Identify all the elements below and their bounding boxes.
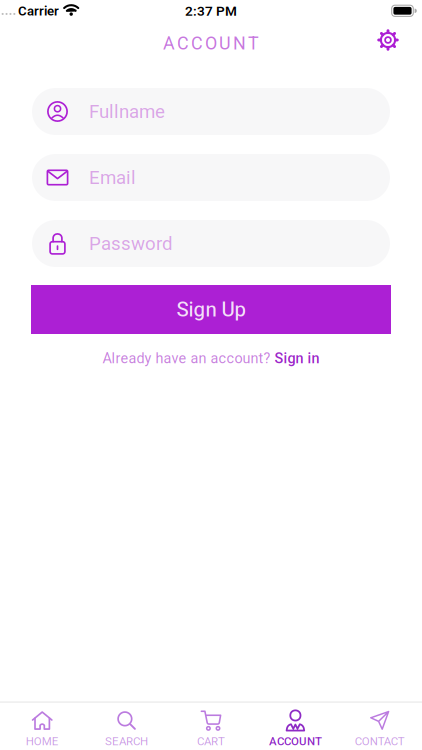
button[interactable]: Fullname (32, 88, 390, 135)
staticText: Already have an account? (102, 350, 270, 367)
staticText: 2:37 PM (185, 3, 237, 19)
button[interactable]: CONTACT (338, 710, 422, 748)
staticText: CART (197, 735, 225, 748)
staticText: HOME (26, 735, 59, 748)
button[interactable]: ACCOUNT (253, 710, 338, 748)
staticText: Email (89, 167, 136, 188)
staticText: Carrier (18, 3, 59, 19)
button[interactable]: Sign Up (31, 285, 391, 334)
staticText: Password (89, 233, 173, 254)
staticText: SEARCH (105, 735, 148, 748)
button[interactable]: SEARCH (84, 710, 169, 748)
button[interactable]: Settings (376, 28, 400, 52)
staticText: CONTACT (355, 735, 405, 748)
button[interactable]: Email (32, 154, 390, 201)
button[interactable]: HOME (0, 710, 84, 748)
button[interactable]: Password (32, 220, 390, 267)
staticText: A C C O U N T (163, 33, 259, 54)
button[interactable]: CART (169, 710, 253, 748)
staticText: Sign in (274, 350, 319, 367)
staticText: Fullname (89, 101, 165, 122)
button[interactable]: Sign in (274, 350, 319, 367)
staticText: Sign Up (176, 297, 245, 321)
staticText: ACCOUNT (269, 735, 322, 748)
